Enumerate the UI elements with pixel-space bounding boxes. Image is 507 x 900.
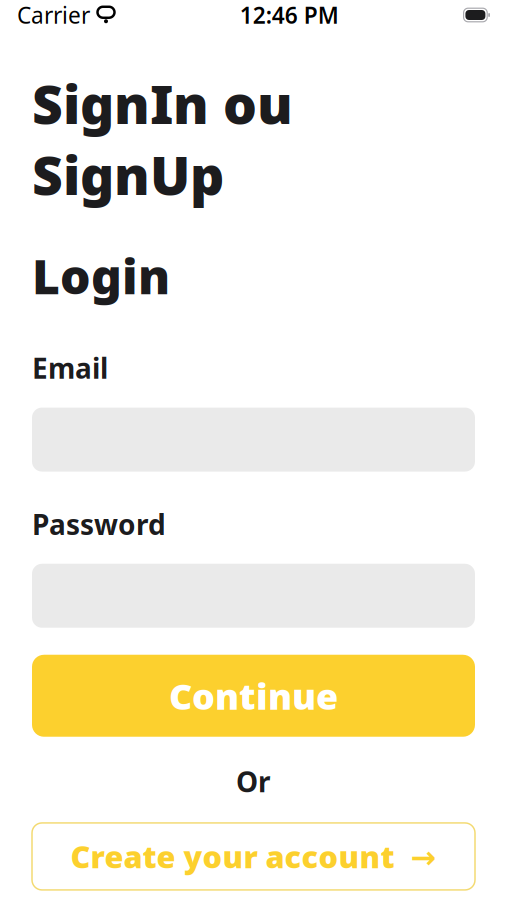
staticText: Or (236, 763, 271, 800)
button[interactable]: Continue (32, 655, 475, 737)
staticText: SignIn ou SignUp (32, 68, 293, 210)
staticText: Carrier (17, 0, 90, 30)
staticText: Create your account → (70, 836, 436, 877)
staticText: 12:46 PM (240, 0, 339, 30)
staticText: Password (32, 506, 166, 543)
staticText: Login (32, 244, 170, 307)
staticText: Email (32, 349, 108, 387)
staticText: Continue (169, 672, 338, 720)
button[interactable]: Create your account → (32, 823, 475, 890)
